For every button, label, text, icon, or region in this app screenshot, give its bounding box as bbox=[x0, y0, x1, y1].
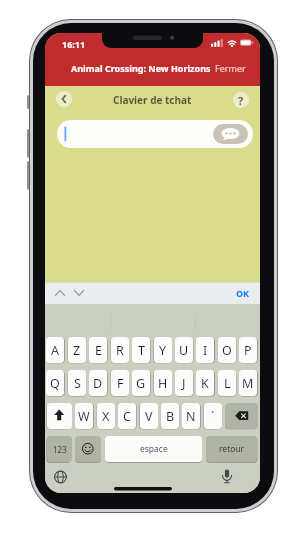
button[interactable]: Q bbox=[46, 370, 64, 396]
staticText: O bbox=[222, 342, 232, 359]
button[interactable]: A bbox=[46, 337, 64, 363]
staticText: P bbox=[244, 342, 252, 359]
button[interactable]: OK bbox=[236, 287, 250, 299]
button[interactable] bbox=[213, 124, 248, 144]
button[interactable] bbox=[56, 91, 72, 107]
staticText: ? bbox=[238, 93, 244, 108]
button[interactable]: Y bbox=[154, 337, 172, 363]
staticText: V bbox=[145, 408, 153, 425]
staticText: 16:11 bbox=[62, 38, 86, 50]
staticText: I bbox=[203, 342, 208, 359]
button[interactable]: E bbox=[89, 337, 107, 363]
staticText: Z bbox=[73, 342, 81, 359]
button[interactable]: D bbox=[89, 370, 107, 396]
staticText: Y bbox=[159, 342, 167, 359]
button[interactable]: P bbox=[239, 337, 257, 363]
staticText: R bbox=[116, 342, 124, 359]
staticText: Fermer bbox=[215, 62, 246, 74]
staticText: K bbox=[201, 375, 209, 392]
button[interactable]: C bbox=[118, 403, 136, 429]
button[interactable]: R bbox=[111, 337, 129, 363]
staticText: N bbox=[186, 408, 196, 425]
staticText: G bbox=[136, 375, 146, 392]
button[interactable] bbox=[72, 286, 86, 300]
button[interactable] bbox=[75, 436, 101, 462]
button[interactable]: X bbox=[97, 403, 115, 429]
staticText: 123 bbox=[53, 444, 67, 455]
staticText: Animal Crossing: New Horizons bbox=[71, 62, 211, 74]
button[interactable]: L bbox=[218, 370, 236, 396]
button[interactable]: F bbox=[111, 370, 129, 396]
staticText: espace bbox=[140, 443, 168, 455]
button[interactable]: M bbox=[239, 370, 257, 396]
staticText: S bbox=[74, 375, 81, 392]
button[interactable]: O bbox=[218, 337, 236, 363]
button[interactable] bbox=[53, 286, 67, 300]
staticText: L bbox=[224, 375, 231, 392]
staticText: Clavier de tchat bbox=[113, 93, 192, 107]
button[interactable]: I bbox=[196, 337, 214, 363]
button[interactable]: J bbox=[175, 370, 193, 396]
button[interactable]: V bbox=[140, 403, 158, 429]
button[interactable]: U bbox=[175, 337, 193, 363]
button[interactable] bbox=[218, 467, 236, 485]
staticText: M bbox=[242, 375, 254, 392]
button[interactable] bbox=[226, 403, 258, 429]
button[interactable]: N bbox=[182, 403, 200, 429]
staticText: J bbox=[182, 375, 186, 392]
staticText: W bbox=[78, 408, 90, 425]
button[interactable]: G bbox=[132, 370, 150, 396]
button[interactable]: ´ bbox=[204, 403, 222, 429]
staticText: A bbox=[51, 342, 59, 359]
staticText: C bbox=[123, 408, 131, 425]
button[interactable]: 123 bbox=[47, 436, 72, 462]
staticText: X bbox=[102, 408, 110, 425]
staticText: E bbox=[95, 342, 102, 359]
button[interactable]: ? bbox=[233, 92, 249, 108]
staticText: U bbox=[179, 342, 189, 359]
button[interactable]: Fermer bbox=[215, 62, 246, 74]
staticText: Q bbox=[50, 375, 60, 392]
staticText: F bbox=[117, 375, 124, 392]
staticText: retour bbox=[219, 443, 245, 455]
staticText: H bbox=[158, 375, 168, 392]
button[interactable] bbox=[47, 403, 72, 429]
button[interactable] bbox=[52, 468, 70, 486]
staticText: D bbox=[93, 375, 103, 392]
button[interactable]: B bbox=[161, 403, 179, 429]
button[interactable]: T bbox=[132, 337, 150, 363]
button[interactable]: Z bbox=[68, 337, 86, 363]
button[interactable]: espace bbox=[105, 436, 202, 462]
staticText: B bbox=[166, 408, 175, 425]
button[interactable]: S bbox=[68, 370, 86, 396]
staticText: T bbox=[138, 342, 145, 359]
button[interactable]: K bbox=[196, 370, 214, 396]
staticText: ´ bbox=[211, 408, 215, 425]
button[interactable] bbox=[57, 120, 253, 148]
staticText: OK bbox=[236, 287, 250, 299]
button[interactable]: retour bbox=[206, 436, 257, 462]
button[interactable]: H bbox=[154, 370, 172, 396]
button[interactable]: W bbox=[75, 403, 93, 429]
